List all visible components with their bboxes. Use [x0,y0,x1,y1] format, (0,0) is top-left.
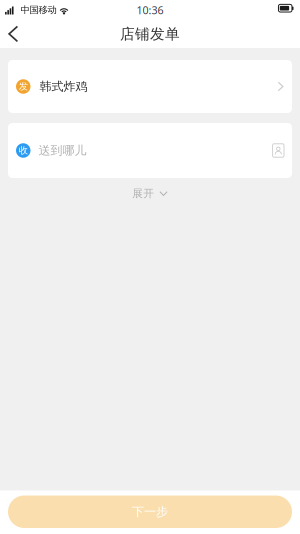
staticText: 发 [19,81,28,92]
button[interactable]: 收 [8,123,292,178]
staticText: 收 [19,145,28,156]
button[interactable]: 发 [8,60,292,113]
button[interactable]: 下一步 [8,495,292,528]
staticText: 店铺发单 [120,25,180,43]
staticText: 韩式炸鸡 [39,79,87,94]
staticText: 下一步 [132,504,168,519]
button[interactable]: 展开 [120,181,180,206]
staticText: 10:36 [136,3,163,17]
staticText: 中国移动 [20,4,56,16]
button[interactable]: Back [0,20,30,47]
staticText: 展开 [132,187,154,200]
staticText: 送到哪儿 [38,143,86,158]
